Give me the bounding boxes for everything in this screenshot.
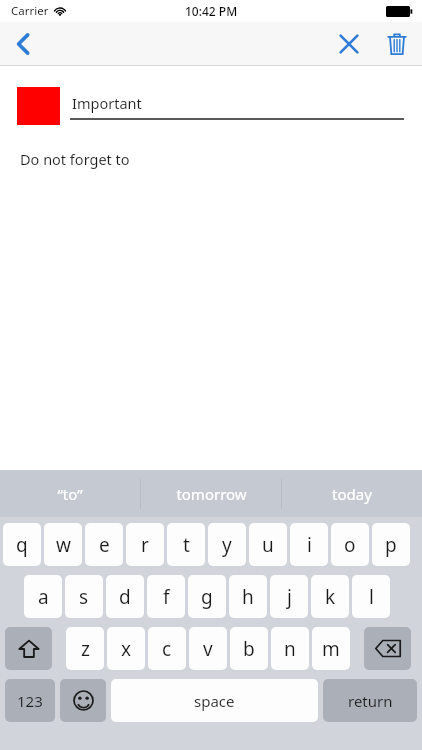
staticText: g <box>201 584 213 610</box>
button[interactable]: y <box>208 523 246 566</box>
button[interactable]: Backspace <box>364 627 411 670</box>
staticText: c <box>162 636 172 662</box>
button[interactable]: f <box>147 575 185 618</box>
button[interactable]: Emoji <box>60 679 106 722</box>
staticText: o <box>344 532 356 558</box>
staticText: today <box>332 484 372 504</box>
staticText: Carrier <box>11 3 49 19</box>
staticText: tomorrow <box>176 484 247 504</box>
staticText: e <box>99 532 110 558</box>
staticText: b <box>243 636 255 662</box>
staticText: t <box>183 532 190 558</box>
button[interactable]: k <box>311 575 349 618</box>
button[interactable]: r <box>126 523 164 566</box>
button[interactable]: tomorrow <box>141 470 281 517</box>
button[interactable]: c <box>148 627 186 670</box>
button[interactable]: o <box>331 523 369 566</box>
button[interactable]: x <box>107 627 145 670</box>
button[interactable]: u <box>249 523 287 566</box>
staticText: d <box>119 584 131 610</box>
button[interactable]: Important <box>70 87 404 118</box>
button[interactable]: v <box>189 627 227 670</box>
button[interactable]: z <box>66 627 104 670</box>
button[interactable]: l <box>352 575 390 618</box>
staticText: “to” <box>57 484 83 504</box>
staticText: 123 <box>17 691 43 711</box>
staticText: q <box>16 532 28 558</box>
staticText: Do not forget to <box>20 149 130 169</box>
button[interactable]: w <box>44 523 82 566</box>
button[interactable]: a <box>24 575 62 618</box>
button[interactable]: e <box>85 523 123 566</box>
button[interactable]: q <box>3 523 41 566</box>
staticText: space <box>194 691 235 711</box>
button[interactable]: Delete <box>372 22 422 66</box>
staticText: u <box>262 532 274 558</box>
button[interactable]: Close <box>326 22 372 66</box>
button[interactable]: space <box>111 679 318 722</box>
staticText: m <box>322 636 340 662</box>
button[interactable]: d <box>106 575 144 618</box>
staticText: h <box>242 584 254 610</box>
button[interactable]: s <box>65 575 103 618</box>
staticText: return <box>348 691 393 711</box>
staticText: k <box>325 584 336 610</box>
staticText: v <box>203 636 213 662</box>
button[interactable]: return <box>323 679 417 722</box>
button[interactable]: h <box>229 575 267 618</box>
button[interactable]: Shift <box>5 627 52 670</box>
button[interactable]: g <box>188 575 226 618</box>
staticText: Important <box>72 93 142 113</box>
button[interactable]: b <box>230 627 268 670</box>
button[interactable]: 123 <box>5 679 55 722</box>
button[interactable]: i <box>290 523 328 566</box>
staticText: p <box>385 532 397 558</box>
staticText: z <box>81 636 90 662</box>
staticText: n <box>284 636 296 662</box>
staticText: j <box>287 584 292 610</box>
staticText: l <box>369 584 374 610</box>
button[interactable]: m <box>312 627 350 670</box>
button[interactable]: j <box>270 575 308 618</box>
staticText: i <box>307 532 312 558</box>
button[interactable]: “to” <box>0 470 140 517</box>
button[interactable]: Back <box>0 22 46 66</box>
staticText: 10:42 PM <box>185 3 238 19</box>
staticText: s <box>79 584 89 610</box>
button[interactable]: t <box>167 523 205 566</box>
staticText: r <box>141 532 149 558</box>
staticText: a <box>38 584 49 610</box>
button[interactable]: n <box>271 627 309 670</box>
button[interactable]: today <box>282 470 422 517</box>
button[interactable]: p <box>372 523 410 566</box>
staticText: w <box>56 532 71 558</box>
staticText: y <box>222 532 232 558</box>
staticText: x <box>121 636 132 662</box>
staticText: f <box>163 584 170 610</box>
